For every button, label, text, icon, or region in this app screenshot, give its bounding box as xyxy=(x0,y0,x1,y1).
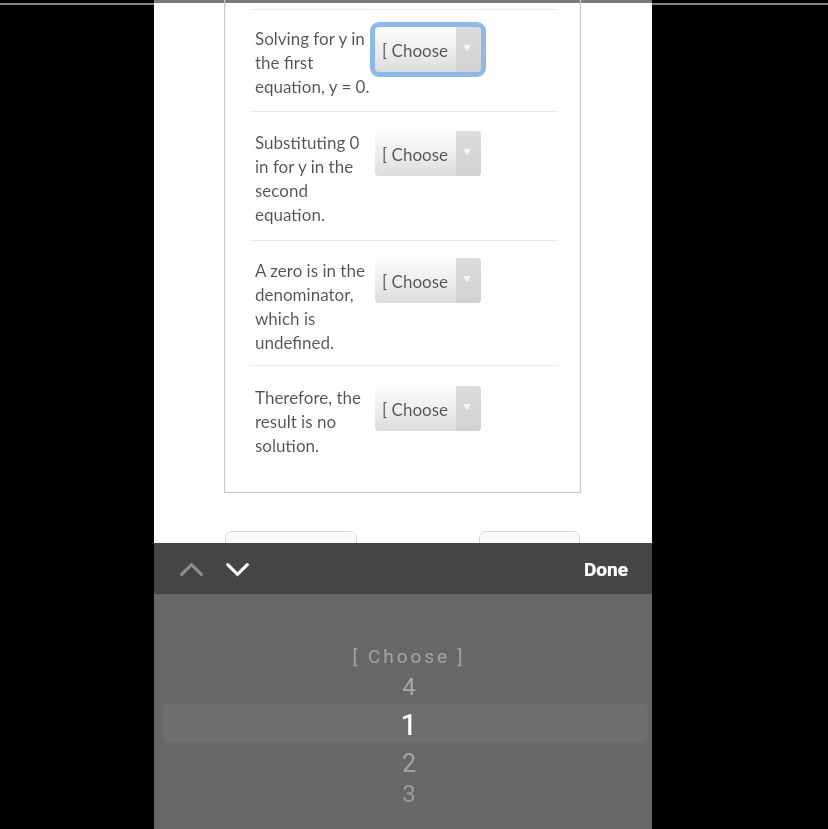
button[interactable]: [ Choose xyxy=(375,258,481,303)
staticText: 3 xyxy=(160,780,658,808)
button[interactable]: [ Choose xyxy=(375,27,481,72)
staticText: Done xyxy=(584,558,628,580)
staticText: [ Choose xyxy=(382,40,449,60)
staticText: [ Choose ] xyxy=(160,645,658,667)
button[interactable]: [ Choose xyxy=(375,131,481,176)
staticText: 4 xyxy=(160,673,658,701)
button[interactable]: Next field xyxy=(214,547,260,591)
button[interactable]: Done xyxy=(572,550,640,588)
staticText: [ Choose xyxy=(382,144,449,164)
staticText: 2 xyxy=(160,749,658,778)
staticText: [ Choose xyxy=(382,399,449,419)
staticText: Substituting 0 in for y in the second eq… xyxy=(255,132,360,225)
staticText: Therefore, the result is no solution. xyxy=(255,387,361,456)
button[interactable]: Previous field xyxy=(169,547,214,591)
staticText: 1 xyxy=(160,708,658,742)
staticText: [ Choose xyxy=(382,271,449,291)
button[interactable] xyxy=(479,531,580,575)
button[interactable] xyxy=(225,531,357,575)
staticText: Solving for y in the first equation, y =… xyxy=(255,28,370,97)
button[interactable]: [ Choose xyxy=(375,386,481,431)
staticText: A zero is in the denominator, which is u… xyxy=(255,260,365,353)
